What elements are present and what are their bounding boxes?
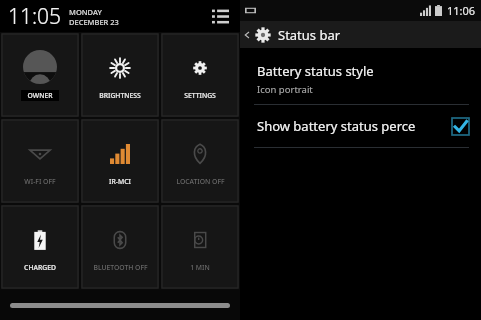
button[interactable]: WI-FI OFF — [1, 119, 79, 203]
staticText: SETTINGS — [184, 91, 216, 100]
staticText: OWNER — [27, 91, 53, 100]
staticText: 11:06 — [447, 3, 476, 18]
staticText: LOCATION OFF — [176, 177, 225, 186]
button[interactable]: BRIGHTNESS — [81, 33, 159, 117]
staticText: Battery status style — [257, 62, 374, 80]
staticText: IR-MCI — [109, 177, 131, 186]
button[interactable]: 1 MIN — [161, 205, 239, 289]
other: Back — [243, 31, 251, 39]
staticText: Icon portrait — [257, 83, 313, 96]
button[interactable]: Back — [240, 21, 481, 48]
button[interactable]: Notifications list — [208, 4, 232, 28]
staticText: 1 MIN — [190, 263, 210, 272]
button[interactable]: LOCATION OFF — [161, 119, 239, 203]
staticText: DECEMBER 23 — [69, 17, 119, 27]
staticText: BRIGHTNESS — [99, 91, 141, 100]
staticText: Status bar — [278, 26, 341, 44]
other: Show battery status percentage — [452, 118, 469, 135]
button[interactable]: IR-MCI — [81, 119, 159, 203]
button[interactable]: CHARGED — [1, 205, 79, 289]
button[interactable] — [10, 303, 230, 308]
button[interactable]: SETTINGS — [161, 33, 239, 117]
staticText: WI-FI OFF — [24, 177, 56, 186]
staticText: CHARGED — [24, 263, 56, 272]
staticText: BLUETOOTH OFF — [93, 263, 148, 272]
staticText: MONDAY — [69, 7, 102, 17]
button[interactable]: Battery status style — [240, 56, 481, 104]
button[interactable]: OWNER — [1, 33, 79, 117]
button[interactable]: BLUETOOTH OFF — [81, 205, 159, 289]
staticText: Show battery status perce — [257, 117, 416, 135]
staticText: 11:05 — [8, 2, 62, 31]
button[interactable]: Show battery status perce — [240, 105, 481, 147]
